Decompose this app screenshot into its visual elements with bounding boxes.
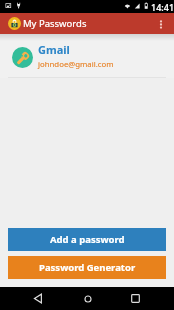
staticText: My Passwords (23, 17, 87, 30)
button[interactable]: Home (76, 287, 99, 310)
staticText: Password Generator (39, 261, 136, 274)
button[interactable]: Gmail (0, 34, 174, 78)
button[interactable]: Add a password (8, 228, 166, 251)
staticText: 14:41 (151, 1, 174, 13)
button[interactable]: Back (27, 287, 50, 310)
staticText: johndoe@gmail.com (38, 59, 114, 70)
button[interactable]: More options (154, 17, 168, 31)
button[interactable]: Recents (124, 287, 147, 310)
button[interactable]: Password Generator (8, 256, 166, 279)
staticText: Add a password (50, 233, 125, 246)
staticText: Gmail (38, 42, 70, 57)
